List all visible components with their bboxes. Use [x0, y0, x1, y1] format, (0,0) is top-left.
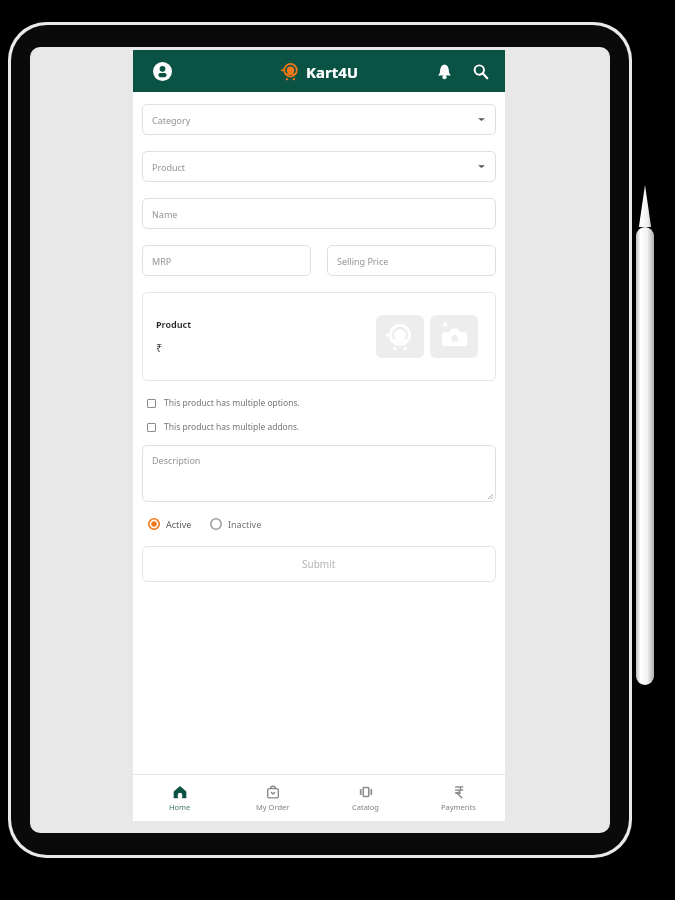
button[interactable]: Catalog: [319, 775, 412, 821]
button[interactable]: Add photo: [430, 315, 478, 358]
button[interactable]: Search: [465, 56, 495, 86]
button[interactable]: MRP: [142, 245, 311, 276]
button[interactable]: Inactive: [208, 516, 264, 532]
staticText: Catalog: [352, 802, 379, 812]
staticText: This product has multiple addons.: [164, 421, 300, 433]
staticText: Description: [152, 454, 201, 466]
staticText: Selling Price: [337, 255, 389, 267]
staticText: Payments: [441, 802, 476, 812]
button[interactable]: Product: [142, 151, 496, 182]
button[interactable]: Active: [146, 516, 194, 532]
staticText: Active: [166, 518, 192, 530]
staticText: Submit: [302, 557, 336, 571]
button[interactable]: Home: [133, 775, 226, 821]
staticText: Kart4U: [306, 62, 359, 82]
staticText: This product has multiple options.: [164, 397, 300, 409]
button[interactable]: This product has multiple addons.: [142, 419, 496, 435]
staticText: Home: [169, 802, 191, 812]
button[interactable]: Profile: [147, 56, 177, 86]
button[interactable]: Notifications: [429, 56, 459, 86]
button[interactable]: Payments: [412, 775, 505, 821]
staticText: MRP: [152, 255, 172, 267]
staticText: Category: [152, 114, 191, 126]
staticText: Product: [152, 161, 186, 173]
button[interactable]: Selling Price: [327, 245, 496, 276]
button[interactable]: Product: [142, 292, 496, 381]
button[interactable]: This product has multiple options.: [142, 395, 496, 411]
staticText: ₹: [156, 340, 163, 355]
button[interactable]: Name: [142, 198, 496, 229]
staticText: Product: [156, 318, 192, 330]
staticText: Name: [152, 208, 178, 220]
staticText: My Order: [256, 802, 290, 812]
button[interactable]: Description: [142, 445, 496, 502]
button[interactable]: Category: [142, 104, 496, 135]
staticText: Inactive: [228, 518, 262, 530]
button[interactable]: My Order: [226, 775, 319, 821]
button[interactable]: Submit: [142, 546, 496, 582]
